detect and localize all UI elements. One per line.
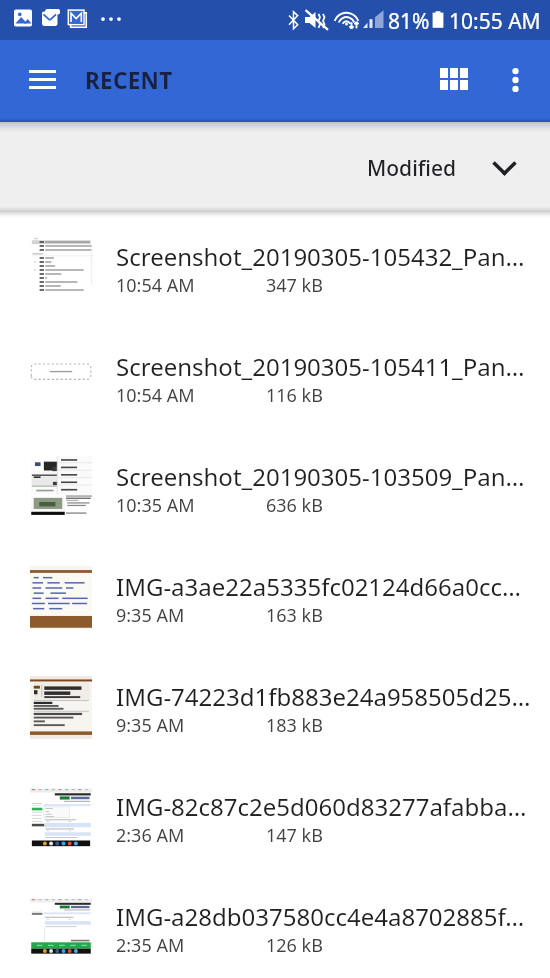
button[interactable]: Grid view <box>426 51 482 107</box>
staticText: 10:54 AM <box>116 383 195 408</box>
staticText: 636 kB <box>266 493 323 518</box>
staticText: 163 kB <box>266 603 323 628</box>
button[interactable]: Open navigation drawer <box>14 51 70 107</box>
staticText: Screenshot_20190305-105432_Pan… <box>116 240 525 273</box>
staticText: IMG-a28db037580cc4e4a8702885f… <box>116 900 525 933</box>
staticText: 2:36 AM <box>116 823 185 848</box>
button[interactable]: More options <box>489 54 541 106</box>
button[interactable]: IMG-82c87c2e5d060d83277afabba… <box>0 762 550 872</box>
staticText: 9:35 AM <box>116 713 185 738</box>
staticText: 147 kB <box>266 823 323 848</box>
staticText: IMG-a3ae22a5335fc02124d66a0cc… <box>116 570 521 603</box>
staticText: 116 kB <box>266 383 323 408</box>
button[interactable]: IMG-a28db037580cc4e4a8702885f… <box>0 872 550 978</box>
staticText: Modified <box>367 154 457 183</box>
staticText: IMG-74223d1fb883e24a958505d25… <box>116 680 531 713</box>
button[interactable]: Screenshot_20190305-105432_Pan… <box>0 212 550 322</box>
staticText: 81% <box>388 7 430 36</box>
staticText: 2:35 AM <box>116 933 185 958</box>
staticText: 10:54 AM <box>116 273 195 298</box>
button[interactable]: Screenshot_20190305-105411_Pan… <box>0 322 550 432</box>
staticText: 10:35 AM <box>116 493 195 518</box>
staticText: 183 kB <box>266 713 323 738</box>
staticText: 10:55 AM <box>449 7 541 36</box>
staticText: 126 kB <box>266 933 323 958</box>
button[interactable]: IMG-74223d1fb883e24a958505d25… <box>0 652 550 762</box>
staticText: 347 kB <box>266 273 323 298</box>
staticText: 9:35 AM <box>116 603 185 628</box>
staticText: Screenshot_20190305-103509_Pan… <box>116 460 525 493</box>
staticText: RECENT <box>85 65 173 96</box>
button[interactable]: Modified <box>350 143 550 193</box>
button[interactable]: IMG-a3ae22a5335fc02124d66a0cc… <box>0 542 550 652</box>
staticText: Screenshot_20190305-105411_Pan… <box>116 350 525 383</box>
button[interactable]: Screenshot_20190305-103509_Pan… <box>0 432 550 542</box>
staticText: IMG-82c87c2e5d060d83277afabba… <box>116 790 527 823</box>
